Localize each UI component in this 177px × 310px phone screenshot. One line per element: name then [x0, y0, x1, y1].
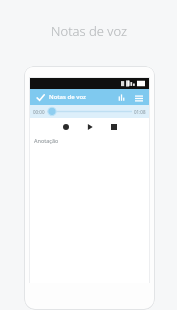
button[interactable]: Parar	[106, 119, 121, 134]
staticText: Anotação	[34, 137, 59, 144]
staticText: Notas de voz	[49, 93, 86, 101]
button[interactable]: Reproduzir	[82, 119, 97, 134]
staticText: 01:08	[134, 109, 146, 115]
button[interactable]: Gravar	[58, 119, 73, 134]
staticText: 00:00	[33, 109, 45, 115]
staticText: Notas de voz	[51, 22, 127, 40]
button[interactable]: Anotação	[30, 134, 149, 283]
button[interactable]: Menu	[132, 91, 145, 104]
button[interactable]: Gravações	[115, 91, 128, 104]
button[interactable]: Salvar	[34, 91, 47, 104]
button[interactable]: Progresso	[47, 107, 132, 116]
